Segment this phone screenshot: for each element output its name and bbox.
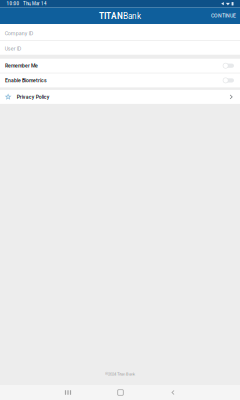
staticText: Thu, Mar 14 [23, 1, 47, 6]
staticText: ©2024 Titan Bank [105, 372, 135, 376]
staticText: Bank [123, 11, 141, 21]
button[interactable]: Home [94, 385, 147, 400]
button[interactable]: Enable Biometrics [0, 73, 240, 87]
button[interactable]: Back [147, 385, 199, 400]
button[interactable]: Remember Me [0, 59, 240, 73]
button[interactable]: CONTINUE [207, 9, 240, 22]
staticText: Enable Biometrics [5, 77, 47, 83]
staticText: TITAN [99, 11, 123, 21]
button[interactable]: Recent apps [42, 385, 94, 400]
staticText: Company ID [5, 30, 34, 36]
staticText: Privacy Policy [17, 94, 50, 100]
staticText: Remember Me [5, 63, 38, 69]
staticText: CONTINUE [211, 13, 236, 19]
button[interactable]: Privacy Policy [0, 90, 240, 104]
staticText: User ID [5, 46, 22, 52]
staticText: 10:00 [6, 1, 19, 6]
